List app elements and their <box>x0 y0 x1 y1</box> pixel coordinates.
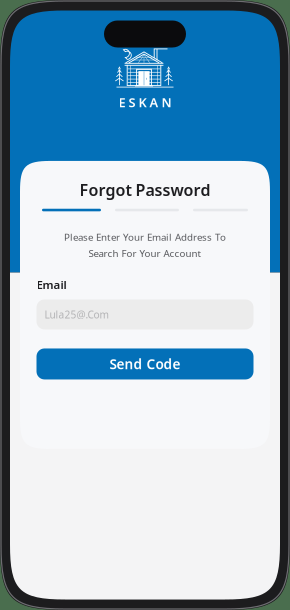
staticText: Send Code <box>109 355 180 373</box>
staticText: Search For Your Account <box>88 247 201 260</box>
staticText: Forgot Password <box>79 179 210 201</box>
staticText: E S K A N <box>118 93 171 111</box>
staticText: Please Enter Your Email Address To <box>64 230 226 244</box>
staticText: Email <box>36 277 66 292</box>
staticText: Lula25@.Com <box>44 308 108 321</box>
button[interactable]: Send Code <box>36 348 253 379</box>
